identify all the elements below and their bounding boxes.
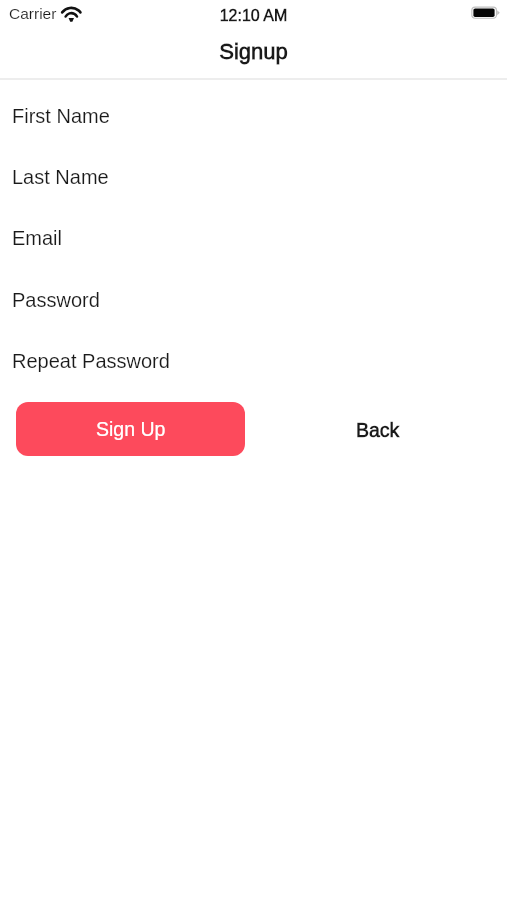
- staticText: Password: [12, 289, 100, 311]
- staticText: First Name: [12, 105, 110, 127]
- other: Wi-Fi signal: [58, 2, 84, 24]
- button[interactable]: First Name: [0, 94, 507, 138]
- button[interactable]: Last Name: [0, 155, 507, 199]
- staticText: Repeat Password: [12, 350, 170, 372]
- staticText: Carrier: [9, 5, 57, 22]
- button[interactable]: Sign Up: [16, 402, 245, 456]
- staticText: Sign Up: [96, 418, 166, 440]
- staticText: Email: [12, 227, 63, 249]
- button[interactable]: Back: [311, 403, 445, 457]
- staticText: 12:10 AM: [0, 7, 507, 25]
- staticText: Back: [356, 419, 400, 441]
- staticText: Last Name: [12, 166, 109, 188]
- button[interactable]: Email: [0, 216, 507, 260]
- other: Battery full: [471, 6, 501, 20]
- button[interactable]: Password: [0, 278, 507, 322]
- button[interactable]: Repeat Password: [0, 339, 507, 383]
- staticText: Signup: [0, 39, 507, 64]
